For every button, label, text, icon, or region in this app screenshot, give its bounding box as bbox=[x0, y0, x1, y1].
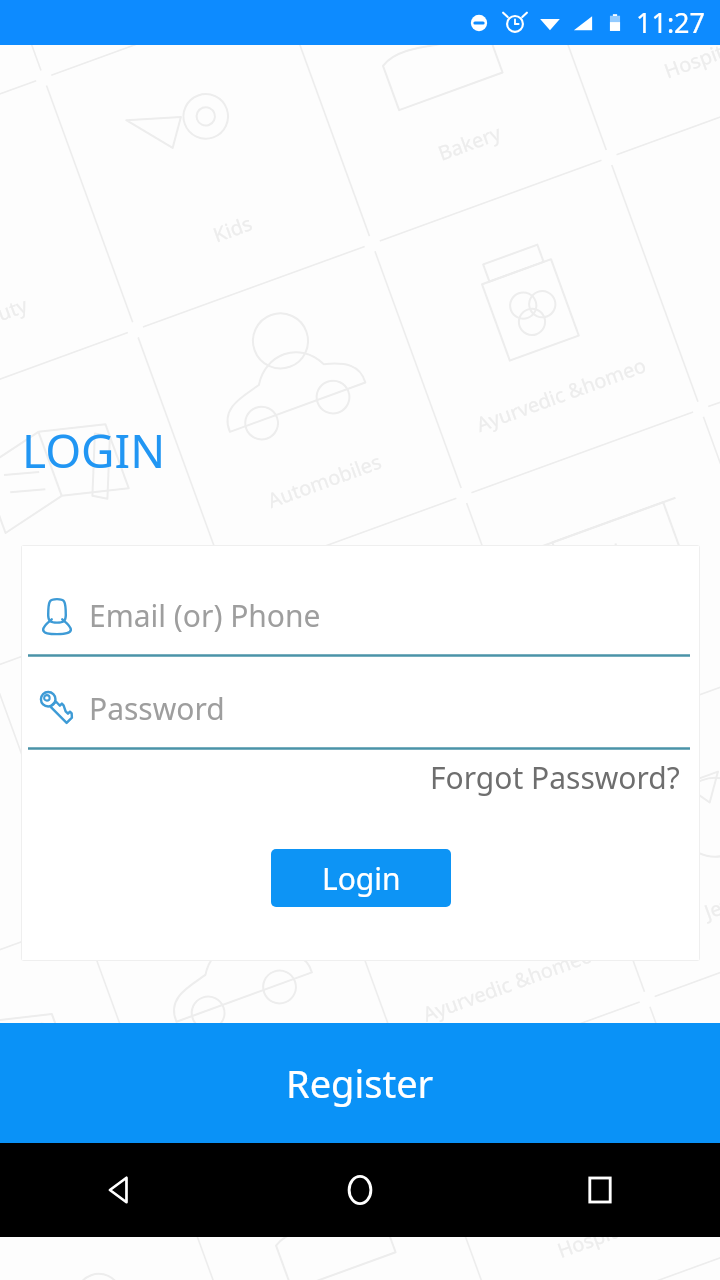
staticText: Password bbox=[89, 688, 225, 729]
button[interactable]: Recent apps bbox=[480, 1143, 720, 1237]
button[interactable]: Back bbox=[0, 1143, 240, 1237]
staticText: Register bbox=[286, 1057, 434, 1109]
staticText: LOGIN bbox=[22, 419, 166, 482]
button[interactable]: Password bbox=[21, 686, 700, 750]
button[interactable]: Login bbox=[271, 849, 451, 907]
staticText: Login bbox=[322, 858, 401, 899]
staticText: 11:27 bbox=[636, 4, 706, 41]
staticText: Email (or) Phone bbox=[89, 595, 321, 636]
staticText: Forgot Password? bbox=[430, 757, 680, 798]
button[interactable]: Email (or) Phone bbox=[21, 593, 700, 657]
button[interactable]: Register bbox=[0, 1023, 720, 1143]
button[interactable]: Forgot Password? bbox=[420, 753, 700, 802]
button[interactable]: Home bbox=[240, 1143, 480, 1237]
